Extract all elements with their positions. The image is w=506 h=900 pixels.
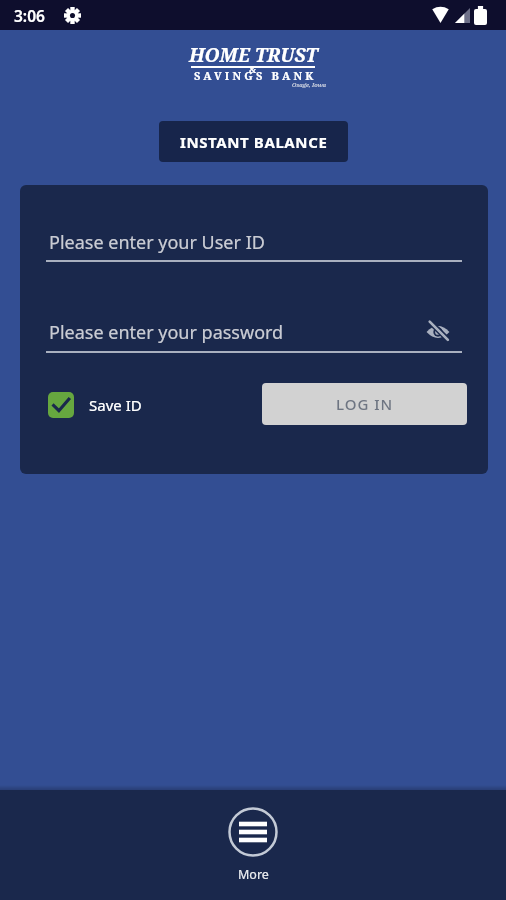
staticText: More — [238, 866, 269, 883]
staticText: LOG IN — [336, 394, 394, 414]
staticText: Please enter your password — [49, 320, 284, 345]
staticText: Osage, Iowa — [292, 81, 327, 89]
button[interactable]: More — [228, 807, 278, 883]
button[interactable]: INSTANT BALANCE — [159, 121, 348, 162]
staticText: HOME TRUST — [189, 42, 318, 68]
staticText: INSTANT BALANCE — [180, 132, 328, 152]
button[interactable] — [425, 319, 451, 345]
button[interactable] — [46, 303, 418, 352]
staticText: 3:06 — [14, 5, 45, 26]
button[interactable]: Save ID — [48, 392, 142, 418]
staticText: Please enter your User ID — [49, 230, 265, 255]
button[interactable] — [46, 213, 482, 262]
staticText: SAVINGS BANK — [194, 68, 317, 83]
staticText: & — [249, 63, 257, 75]
button[interactable]: LOG IN — [262, 383, 467, 425]
staticText: Save ID — [89, 395, 142, 415]
